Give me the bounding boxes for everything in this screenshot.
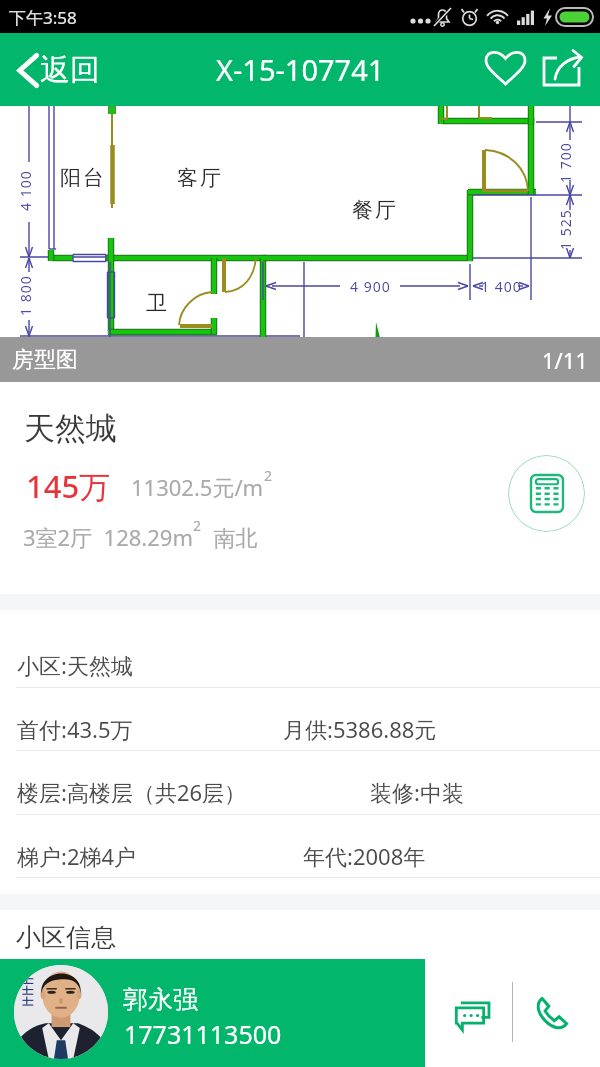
staticText: 2	[264, 466, 273, 485]
staticText: 2	[193, 516, 202, 535]
staticText: 17731113500	[124, 1017, 282, 1051]
button[interactable]: 楼层:高楼层（共26层）	[0, 751, 600, 815]
staticText: 郭永强	[123, 984, 198, 1015]
button[interactable]: 郭永强	[0, 959, 425, 1067]
staticText: 客厅	[176, 165, 222, 191]
staticText: 阳台	[59, 165, 105, 191]
staticText: 1 400	[481, 277, 522, 295]
button[interactable]: 返回	[0, 43, 114, 97]
staticText: 月供:5386.88元	[283, 714, 437, 744]
staticText: 1 800	[16, 275, 34, 316]
staticText: 145万	[26, 465, 111, 507]
button[interactable]: 小区:天然城	[0, 610, 600, 688]
staticText: 1 525	[556, 209, 574, 250]
button[interactable]: Mortgage calculator	[508, 455, 585, 532]
button[interactable]: Call	[517, 973, 587, 1053]
button[interactable]: 首付:43.5万	[0, 688, 600, 751]
button[interactable]: Message	[436, 973, 510, 1053]
staticText: 南北	[202, 522, 258, 552]
staticText: 1/11	[542, 345, 588, 375]
staticText: 装修:中装	[370, 777, 464, 807]
staticText: 梯户:2梯4户	[17, 841, 137, 871]
staticText: 下午3:58	[9, 6, 77, 29]
button[interactable]: Share	[536, 50, 592, 110]
staticText: 首付:43.5万	[17, 714, 133, 744]
button[interactable]: 梯户:2梯4户	[0, 815, 600, 878]
staticText: 小区:天然城	[17, 650, 133, 680]
button[interactable]: Favourite	[478, 45, 534, 105]
staticText: 年代:2008年	[303, 841, 426, 871]
staticText: 房型图	[12, 346, 78, 374]
staticText: 返回	[40, 51, 100, 89]
staticText: 4 100	[16, 170, 34, 211]
staticText: 卫	[145, 290, 168, 316]
staticText: 楼层:高楼层（共26层）	[17, 777, 247, 807]
staticText: 天然城	[24, 409, 117, 448]
staticText: 餐厅	[351, 197, 397, 223]
staticText: 1 700	[556, 142, 574, 183]
staticText: 3室2厅 128.29m	[23, 522, 193, 552]
button[interactable]: Agent photo	[14, 965, 108, 1059]
staticText: X-15-107741	[216, 50, 385, 89]
staticText: 小区信息	[16, 922, 116, 953]
staticText: 4 900	[350, 277, 391, 295]
staticText: 11302.5元/m	[131, 472, 264, 502]
